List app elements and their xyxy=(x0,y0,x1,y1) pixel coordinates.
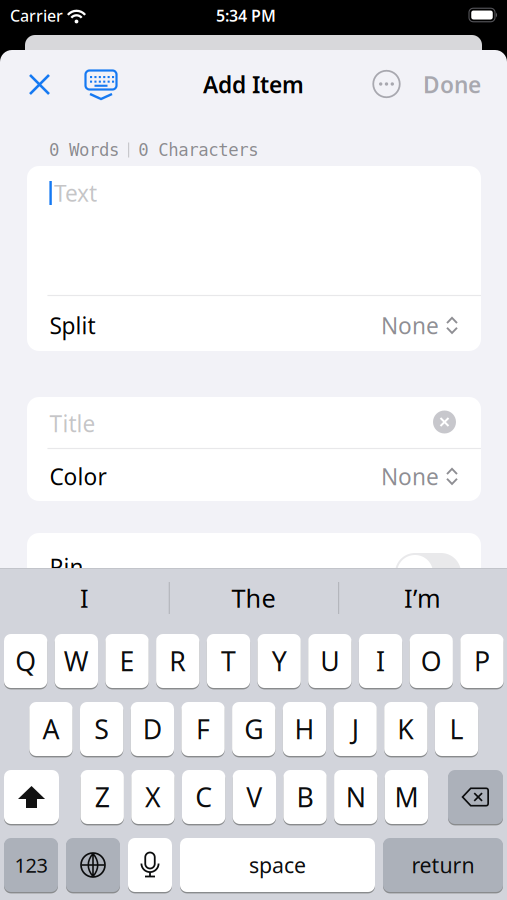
staticText: Done xyxy=(423,69,481,99)
staticText: N xyxy=(346,779,366,815)
staticText: M xyxy=(394,779,418,815)
staticText: 0 Characters xyxy=(138,140,258,160)
button[interactable]: T xyxy=(207,633,250,689)
staticText: Y xyxy=(272,643,287,679)
button[interactable]: Clear Text xyxy=(433,410,456,433)
staticText: H xyxy=(294,711,314,747)
button[interactable]: I xyxy=(4,576,164,620)
staticText: I’m xyxy=(404,581,441,615)
button[interactable]: I’m xyxy=(342,576,502,620)
button[interactable]: A xyxy=(29,701,73,757)
button[interactable]: space xyxy=(180,837,375,893)
button[interactable]: H xyxy=(283,701,326,757)
staticText: G xyxy=(244,711,263,747)
button[interactable]: Q xyxy=(4,633,47,689)
staticText: A xyxy=(42,711,59,747)
staticText: Q xyxy=(15,643,36,679)
staticText: 0 Words xyxy=(49,140,119,160)
staticText: W xyxy=(64,643,89,679)
staticText: C xyxy=(195,779,212,815)
staticText: The xyxy=(231,581,275,615)
button[interactable]: O xyxy=(410,633,453,689)
button[interactable]: return xyxy=(383,837,503,893)
staticText: J xyxy=(352,711,359,747)
staticText: P xyxy=(474,643,490,679)
button[interactable]: W xyxy=(55,633,98,689)
staticText: space xyxy=(249,851,306,879)
button[interactable]: E xyxy=(105,633,149,689)
staticText: None xyxy=(381,461,439,491)
button[interactable]: Done xyxy=(423,69,481,99)
staticText: Title xyxy=(49,408,95,438)
button[interactable]: X xyxy=(131,769,175,825)
staticText: U xyxy=(320,643,339,679)
button[interactable]: S xyxy=(80,701,123,757)
button[interactable]: G xyxy=(232,701,275,757)
button[interactable]: R xyxy=(156,633,199,689)
staticText: K xyxy=(397,711,414,747)
button[interactable]: D xyxy=(131,701,174,757)
staticText: L xyxy=(450,711,464,747)
button[interactable]: M xyxy=(385,769,428,825)
staticText: None xyxy=(381,310,439,340)
button[interactable]: More xyxy=(369,67,403,101)
staticText: Color xyxy=(49,461,106,491)
button[interactable]: V xyxy=(233,769,276,825)
button[interactable]: The xyxy=(173,576,333,620)
button[interactable]: F xyxy=(181,701,225,757)
staticText: return xyxy=(411,851,474,879)
button[interactable]: Dictate xyxy=(128,837,172,893)
staticText: Split xyxy=(49,310,95,340)
button[interactable]: Shift xyxy=(4,769,59,825)
button[interactable]: B xyxy=(283,769,327,825)
button[interactable]: Y xyxy=(257,633,301,689)
staticText: E xyxy=(120,643,135,679)
button[interactable]: Z xyxy=(81,769,124,825)
button[interactable]: K xyxy=(384,701,427,757)
button[interactable]: Pin xyxy=(395,553,461,593)
staticText: Pin xyxy=(49,552,83,582)
staticText: Text xyxy=(54,178,97,208)
button[interactable]: Dismiss Keyboard xyxy=(79,65,123,105)
button[interactable]: Split xyxy=(27,298,481,353)
staticText: Z xyxy=(95,779,110,815)
button[interactable]: Color xyxy=(27,450,481,502)
staticText: X xyxy=(145,779,161,815)
staticText: Add Item xyxy=(203,69,304,99)
staticText: B xyxy=(296,779,313,815)
button[interactable]: P xyxy=(460,633,504,689)
staticText: O xyxy=(421,643,442,679)
staticText: Carrier xyxy=(10,5,63,26)
button[interactable]: 123 xyxy=(4,837,58,893)
staticText: 5:34 PM xyxy=(216,5,276,26)
staticText: V xyxy=(246,779,262,815)
staticText: I xyxy=(376,643,385,679)
staticText: F xyxy=(196,711,210,747)
staticText: I xyxy=(80,581,89,615)
staticText: R xyxy=(169,643,186,679)
button[interactable]: Delete xyxy=(448,769,503,825)
button[interactable]: C xyxy=(182,769,225,825)
button[interactable]: N xyxy=(334,769,377,825)
button[interactable]: I xyxy=(359,633,402,689)
button[interactable]: U xyxy=(308,633,351,689)
staticText: 123 xyxy=(14,852,47,878)
staticText: D xyxy=(143,711,162,747)
button[interactable]: L xyxy=(435,701,478,757)
button[interactable]: Close xyxy=(19,64,59,104)
staticText: T xyxy=(221,643,236,679)
button[interactable]: Next Keyboard xyxy=(66,837,120,893)
button[interactable]: J xyxy=(333,701,377,757)
staticText: S xyxy=(94,711,109,747)
